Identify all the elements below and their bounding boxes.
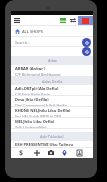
- button[interactable]: Dmu Jhlu (Deflla): [11, 96, 93, 107]
- button[interactable]: Menu: [11, 15, 22, 26]
- staticText: Adıı Tıklacbul: [40, 134, 64, 139]
- staticText: ARBAR (Anbar ): [15, 66, 46, 71]
- staticText: MELJhilu Liku Orfla): [15, 119, 55, 124]
- button[interactable]: Contacts: [74, 147, 85, 158]
- staticText: $: [19, 148, 24, 158]
- staticText: ALL SHOPS: [22, 29, 43, 34]
- staticText: Sus VAl Gulidi MEIS kLDEV: [15, 114, 62, 118]
- button[interactable]: Scan code: [82, 47, 91, 56]
- button[interactable]: Camera: [45, 147, 56, 158]
- staticText: Search...: [15, 40, 31, 45]
- button[interactable]: KHDNE NELJhilu Liku Deflla): [11, 107, 93, 118]
- button[interactable]: MELJhilu Liku Orfla): [11, 118, 93, 129]
- staticText: ESH PRESSENTWI Uku Tuilncu: [15, 142, 74, 147]
- staticText: Tulli Uvchyselltilpi: [15, 125, 47, 129]
- button[interactable]: Flag: [78, 15, 93, 26]
- button[interactable]: Sort: [68, 15, 78, 26]
- staticText: Dmi Commercial fi Koli Hatka: [15, 103, 67, 107]
- button[interactable]: Add location: [82, 38, 91, 47]
- staticText: Adıw: [48, 58, 57, 63]
- button[interactable]: Summary: [58, 15, 68, 26]
- button[interactable]: Search...: [11, 37, 93, 47]
- staticText: C/F Richmond Bechkarow: [15, 72, 61, 77]
- button[interactable]: Payments: [16, 147, 27, 158]
- button[interactable]: ESH PRESSENTWI Uku Tuilncu: [11, 141, 93, 152]
- staticText: KHDNE NELJhilu Liku Deflla): [15, 108, 71, 113]
- staticText: Adlı-DBTpli (Ala Deflu): [15, 86, 59, 91]
- staticText: Adıw Derlla: [42, 79, 63, 84]
- button[interactable]: Location: [59, 147, 70, 158]
- button[interactable]: ARBAR (Anbar ): [11, 65, 93, 77]
- button[interactable]: Adlı-DBTpli (Ala Deflu): [11, 85, 93, 96]
- button[interactable]: ALL SHOPS: [11, 26, 93, 37]
- button[interactable]: Add: [31, 147, 42, 158]
- staticText: Dmu Jhlu (Deflla): [15, 97, 49, 102]
- staticText: C/F Emir Vadıt Katin: [15, 92, 51, 96]
